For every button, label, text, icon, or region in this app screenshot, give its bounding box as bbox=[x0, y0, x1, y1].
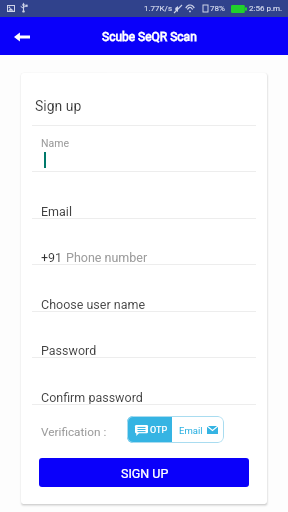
staticText: SIGN UP bbox=[121, 466, 169, 481]
staticText: Sign up bbox=[35, 98, 82, 114]
button[interactable]: Email bbox=[172, 416, 224, 443]
staticText: +91 bbox=[41, 250, 66, 265]
staticText: Choose user name bbox=[41, 297, 146, 312]
staticText: 1.77K/s bbox=[144, 4, 173, 13]
staticText: 78% bbox=[210, 4, 225, 13]
staticText: Phone number bbox=[66, 250, 148, 265]
button[interactable]: SIGN UP bbox=[39, 458, 249, 487]
staticText: Verification : bbox=[41, 425, 107, 439]
staticText: Password bbox=[41, 343, 97, 358]
staticText: Confirm password bbox=[41, 390, 143, 405]
button[interactable]: OTP bbox=[127, 416, 172, 443]
staticText: Scube SeQR Scan bbox=[102, 30, 197, 44]
staticText: Email bbox=[41, 204, 72, 219]
staticText: Name bbox=[41, 137, 69, 149]
staticText: 2:56 p.m. bbox=[249, 4, 283, 13]
staticText: OTP bbox=[150, 425, 168, 436]
staticText: Email bbox=[179, 425, 203, 436]
button[interactable]: Back bbox=[6, 20, 38, 52]
